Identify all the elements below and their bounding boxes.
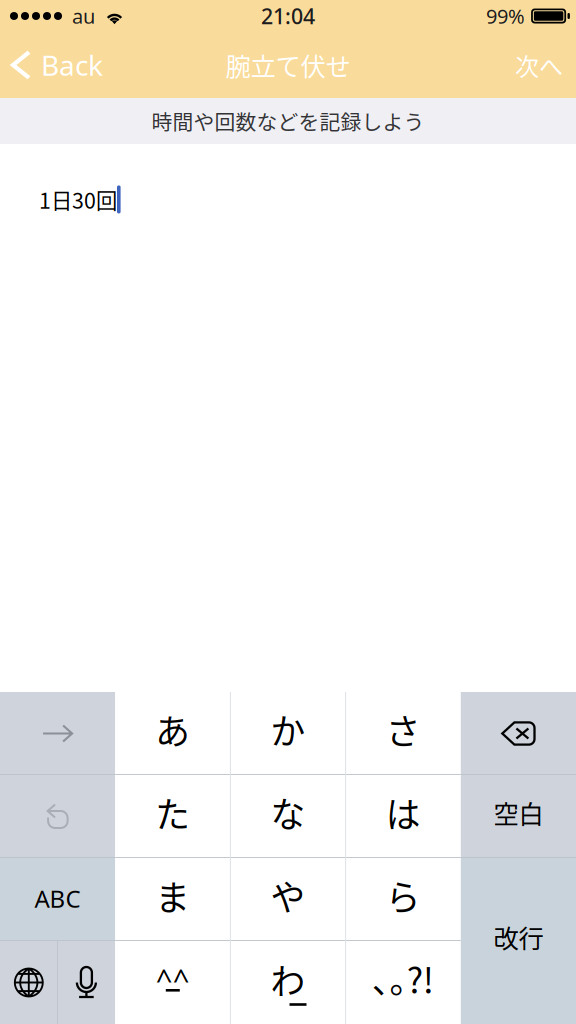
button[interactable]: ら: [346, 858, 461, 941]
button[interactable]: Next candidate: [0, 692, 115, 775]
button[interactable]: わ: [230, 941, 346, 1024]
button[interactable]: は: [346, 775, 461, 858]
button[interactable]: 空白: [461, 775, 576, 858]
staticText: さ: [386, 704, 421, 755]
staticText: あ: [155, 704, 190, 755]
staticText: 21:04: [261, 2, 315, 30]
staticText: ま: [155, 870, 190, 921]
button[interactable]: か: [230, 692, 346, 775]
staticText: ABC: [35, 883, 81, 914]
button[interactable]: Delete: [461, 692, 576, 775]
staticText: 1日30回: [39, 184, 117, 215]
staticText: ^^: [156, 959, 190, 998]
staticText: 時間や回数などを記録しよう: [151, 106, 424, 136]
staticText: や: [270, 870, 305, 921]
staticText: 99%: [486, 3, 525, 29]
button[interactable]: た: [115, 775, 230, 858]
staticText: ､｡?!: [373, 953, 434, 1004]
staticText: な: [270, 787, 305, 838]
staticText: 次へ: [515, 48, 563, 82]
staticText: た: [155, 787, 190, 838]
button[interactable]: 改行: [461, 858, 576, 1024]
button[interactable]: な: [230, 775, 346, 858]
button[interactable]: Undo: [0, 775, 115, 858]
staticText: か: [270, 704, 305, 755]
button[interactable]: ^^: [115, 941, 230, 1024]
staticText: 改行: [493, 919, 543, 955]
button[interactable]: 次へ: [499, 32, 576, 98]
button[interactable]: Dictation: [58, 941, 115, 1024]
button[interactable]: ま: [115, 858, 230, 941]
button[interactable]: ､｡?!: [346, 941, 461, 1024]
staticText: au: [72, 3, 95, 29]
staticText: Back: [41, 46, 103, 84]
button[interactable]: Back: [0, 32, 115, 98]
button[interactable]: あ: [115, 692, 230, 775]
button[interactable]: や: [230, 858, 346, 941]
staticText: わ: [270, 954, 305, 1005]
button[interactable]: さ: [346, 692, 461, 775]
staticText: は: [386, 787, 421, 838]
button[interactable]: Switch keyboard: [0, 941, 58, 1024]
staticText: 腕立て伏せ: [225, 47, 350, 83]
button[interactable]: ABC: [0, 858, 115, 941]
staticText: ら: [386, 870, 421, 921]
staticText: 空白: [493, 794, 543, 831]
